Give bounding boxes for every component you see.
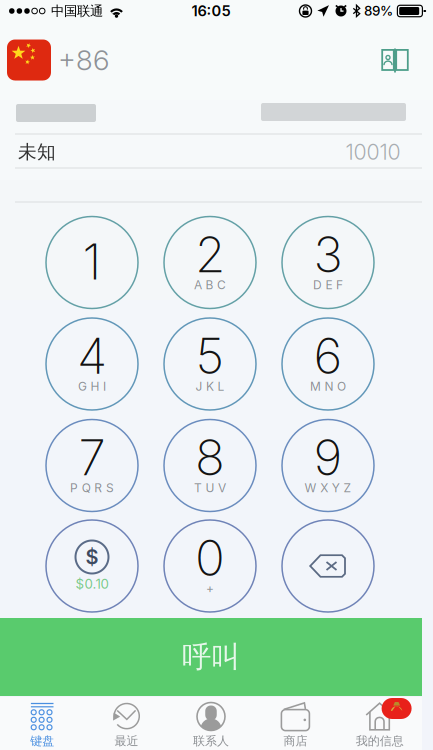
button[interactable]: 呼叫 [0,618,422,696]
button[interactable]: 9 [282,419,374,511]
button[interactable]: 5 [164,318,256,410]
button[interactable]: 3 [282,216,374,308]
button[interactable]: 6 [282,318,374,410]
button[interactable]: 联系人 [169,697,253,750]
staticText: +86 [58,43,109,77]
staticText: PQRS [70,480,114,495]
button[interactable]: 1 [46,216,138,308]
staticText: 16:05 [191,2,230,20]
staticText: 0 [195,528,225,588]
staticText: 7 [78,427,105,487]
staticText: $ [85,545,98,569]
button[interactable]: 2 [164,216,256,308]
button[interactable]: 键盘 [0,697,84,750]
staticText: 2 [195,224,225,284]
staticText: 联系人 [193,734,229,748]
staticText: MNO [310,379,346,393]
button[interactable]: Delete [282,520,374,612]
staticText: 6 [313,326,342,386]
staticText: 89% [364,3,393,19]
staticText: 1 [82,232,101,291]
button[interactable]: 最近 [84,697,169,750]
staticText: 4 [77,326,107,386]
staticText: JKL [195,379,225,393]
staticText: ABC [194,277,226,292]
staticText: 呼叫 [182,639,240,675]
button[interactable]: 7 [46,419,138,511]
staticText: 未知 [18,140,56,163]
staticText: 5 [195,326,224,386]
staticText: $0.10 [75,576,108,592]
staticText: 键盘 [30,734,54,748]
staticText: 10010 [345,139,400,165]
staticText: TUV [194,480,226,495]
button[interactable]: +86 [7,36,157,84]
button[interactable]: 8 [164,419,256,511]
staticText: WXYZ [305,480,351,495]
staticText: 最近 [115,734,139,748]
staticText: 8 [195,427,225,487]
button[interactable]: Contacts [371,36,419,84]
staticText: 3 [313,224,342,284]
staticText: GHI [78,379,106,393]
button[interactable]: 我的信息 [338,697,422,750]
button[interactable]: 商店 [253,697,338,750]
button[interactable]: Call rate [46,520,138,612]
staticText: 我的信息 [356,734,404,748]
staticText: 商店 [283,734,307,748]
button[interactable]: 0 [164,520,256,612]
button[interactable]: 4 [46,318,138,410]
staticText: 9 [313,427,342,487]
staticText: 中国联通 [51,3,103,19]
staticText: DEF [313,277,343,292]
staticText: + [206,581,214,595]
